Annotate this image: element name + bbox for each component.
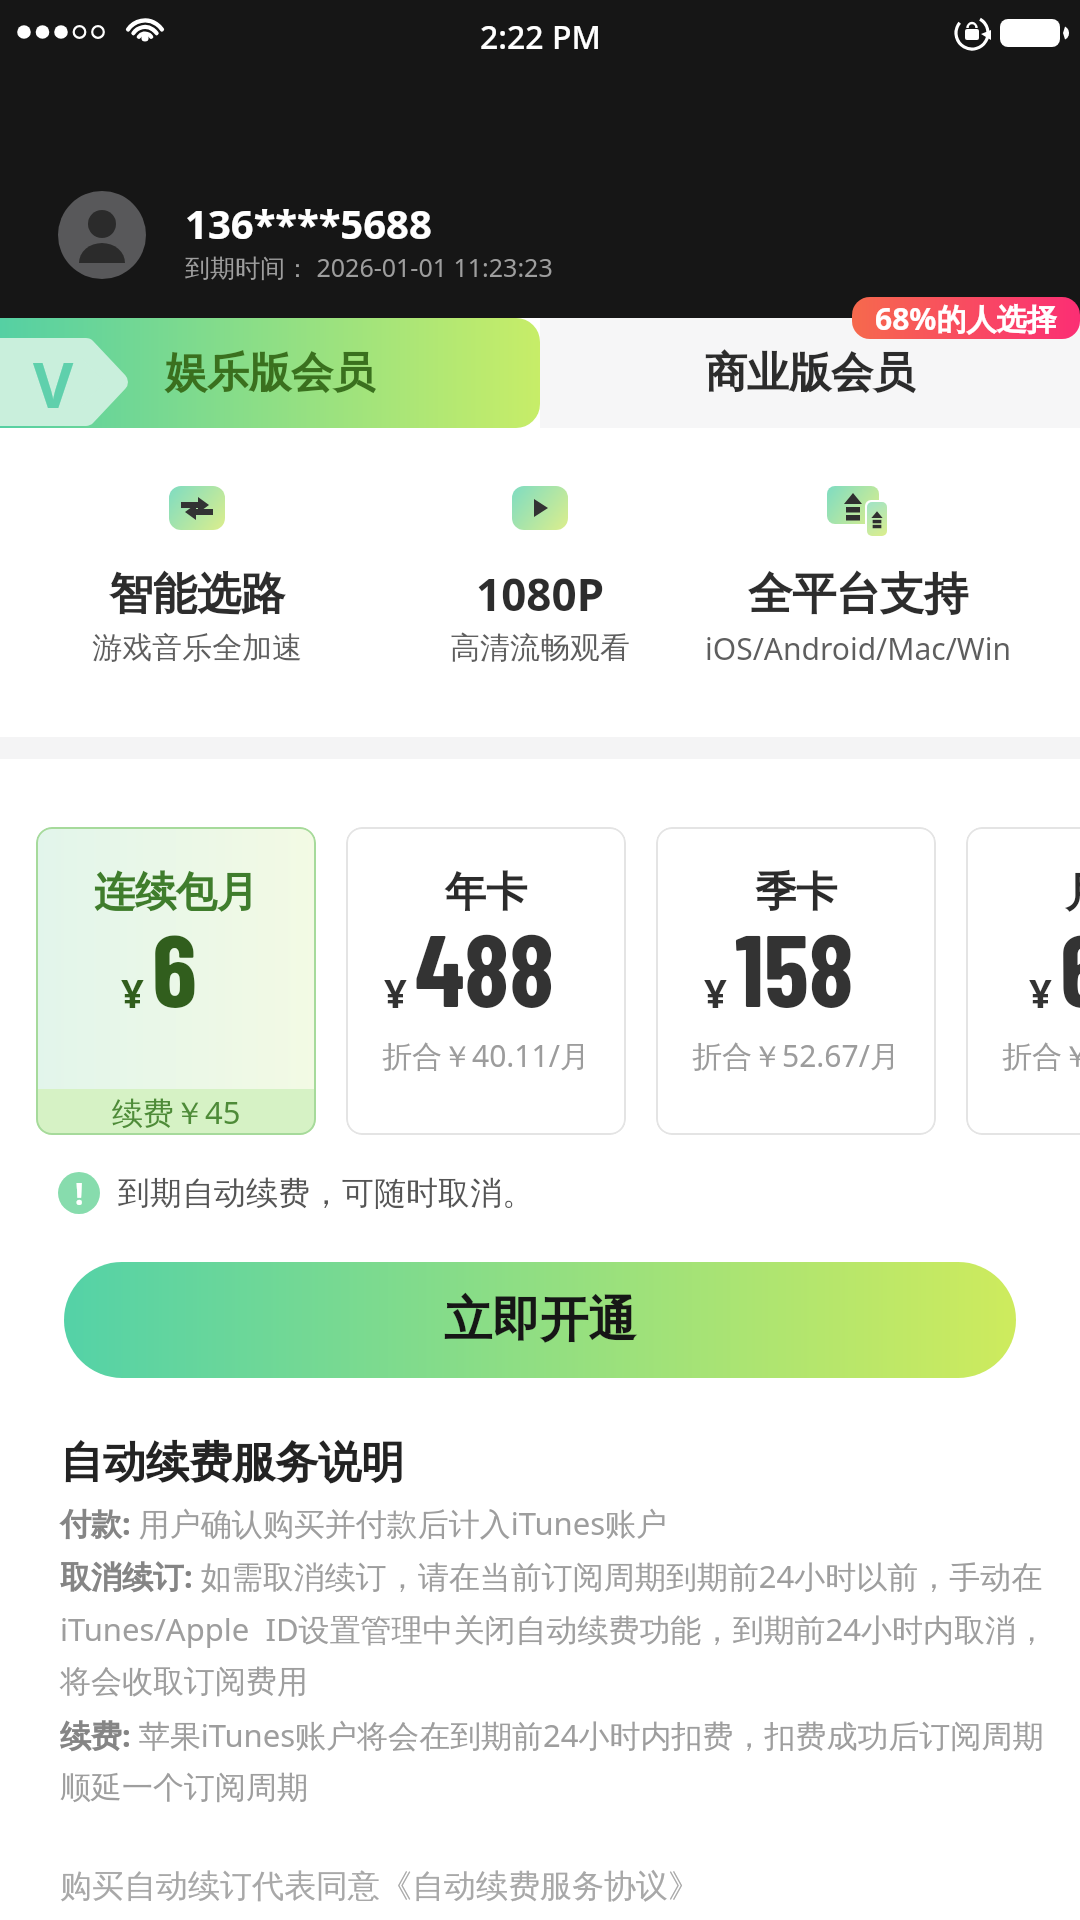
staticText: ¥	[121, 965, 144, 1019]
staticText: 6	[152, 905, 197, 1027]
staticText: 年卡	[445, 867, 527, 919]
staticText: 全平台支持	[748, 567, 968, 622]
staticText: ¥	[704, 965, 727, 1019]
staticText: 立即开通	[444, 1290, 636, 1350]
staticText: 68	[1060, 905, 1080, 1027]
staticText: 折合￥52.67/月	[692, 1035, 900, 1076]
button[interactable]: 购买自动续订代表同意《自动续费服务协议》	[60, 1866, 700, 1906]
button[interactable]: 月卡	[966, 827, 1080, 1135]
staticText: 续费: 苹果iTunes账户将会在到期前24小时内扣费，扣费成功后订阅周期	[60, 1714, 1044, 1756]
button[interactable]: 年卡	[346, 827, 626, 1135]
button[interactable]: 立即开通	[64, 1262, 1016, 1378]
button[interactable]: 68%的人选择	[852, 297, 1080, 339]
staticText: ¥	[384, 965, 407, 1019]
staticText: ¥	[1029, 965, 1052, 1019]
staticText: !	[75, 1173, 84, 1214]
staticText: 续费￥45	[112, 1091, 241, 1133]
staticText: 68%的人选择	[875, 298, 1057, 339]
staticText: 顺延一个订阅周期	[60, 1768, 308, 1807]
staticText: 2:22 PM	[480, 15, 601, 59]
staticText: 季卡	[755, 867, 837, 919]
staticText: 连续包月	[94, 867, 258, 919]
staticText: 将会收取订阅费用	[60, 1662, 308, 1701]
staticText: 高清流畅观看	[450, 629, 630, 667]
staticText: 折合￥68.00/月	[1002, 1035, 1080, 1076]
staticText: 游戏音乐全加速	[92, 629, 302, 667]
staticText: 娱乐版会员	[165, 347, 375, 400]
staticText: 到期自动续费，可随时取消。	[118, 1173, 534, 1213]
staticText: 取消续订: 如需取消续订，请在当前订阅周期到期前24小时以前，手动在	[60, 1555, 1043, 1597]
staticText: 折合￥40.11/月	[382, 1035, 590, 1076]
staticText: V	[33, 342, 74, 426]
staticText: 自动续费服务说明	[60, 1436, 404, 1490]
staticText: 488	[415, 905, 555, 1027]
staticText: 1080P	[476, 564, 604, 624]
staticText: iOS/Android/Mac/Win	[705, 628, 1012, 669]
button[interactable]: V	[0, 318, 540, 428]
staticText: 商业版会员	[705, 347, 915, 400]
staticText: 158	[735, 905, 854, 1027]
button[interactable]: 商业版会员	[540, 318, 1080, 428]
staticText: iTunes/Apple ID设置管理中关闭自动续费功能，到期前24小时内取消，	[60, 1608, 1048, 1650]
staticText: 月卡	[1065, 867, 1080, 919]
staticText: 到期时间： 2026-01-01 11:23:23	[185, 250, 553, 284]
staticText: 136****5688	[185, 196, 432, 250]
staticText: 付款: 用户确认购买并付款后计入iTunes账户	[60, 1502, 668, 1544]
button[interactable]: 季卡	[656, 827, 936, 1135]
button[interactable]: 连续包月	[36, 827, 316, 1135]
staticText: 智能选路	[109, 567, 285, 622]
